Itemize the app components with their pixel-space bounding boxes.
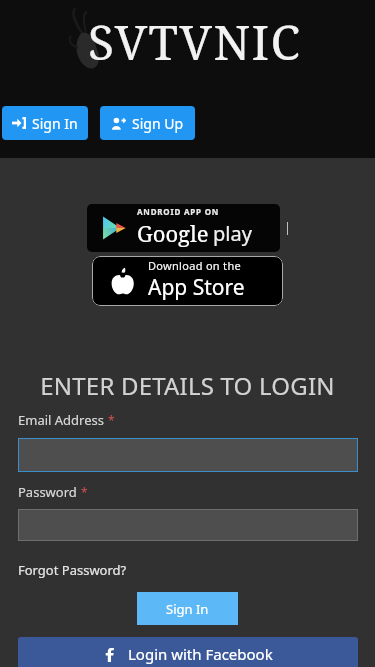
staticText: Login with Facebook xyxy=(128,644,273,664)
staticText: Forgot Password? xyxy=(18,561,127,579)
staticText: Sign Up xyxy=(132,114,184,133)
staticText: * xyxy=(81,484,88,500)
button[interactable]: Forgot Password? xyxy=(18,561,127,579)
button[interactable]: Download on the App Store xyxy=(92,256,283,306)
staticText: Email Address xyxy=(18,411,104,429)
button[interactable]: Sign In xyxy=(2,106,88,140)
staticText: ANDROID APP ON xyxy=(137,206,220,217)
button[interactable]: Get it on Google Play xyxy=(87,204,280,252)
button[interactable]: Sign Up xyxy=(100,106,195,140)
staticText: * xyxy=(108,412,115,428)
button[interactable]: Sign In xyxy=(137,592,238,625)
staticText: Sign In xyxy=(166,600,209,618)
staticText: Google xyxy=(137,218,209,248)
button[interactable]: Login with Facebook xyxy=(18,637,358,667)
staticText: SVTVNIC xyxy=(88,9,302,74)
staticText: App Store xyxy=(148,273,245,302)
staticText: Sign In xyxy=(32,114,78,133)
staticText: play xyxy=(213,220,252,247)
staticText: Download on the xyxy=(148,258,241,273)
button[interactable]: Email Address input xyxy=(18,438,358,472)
staticText: Password xyxy=(18,483,77,501)
staticText: ENTER DETAILS TO LOGIN xyxy=(0,369,375,402)
button[interactable]: Password input xyxy=(18,509,358,541)
